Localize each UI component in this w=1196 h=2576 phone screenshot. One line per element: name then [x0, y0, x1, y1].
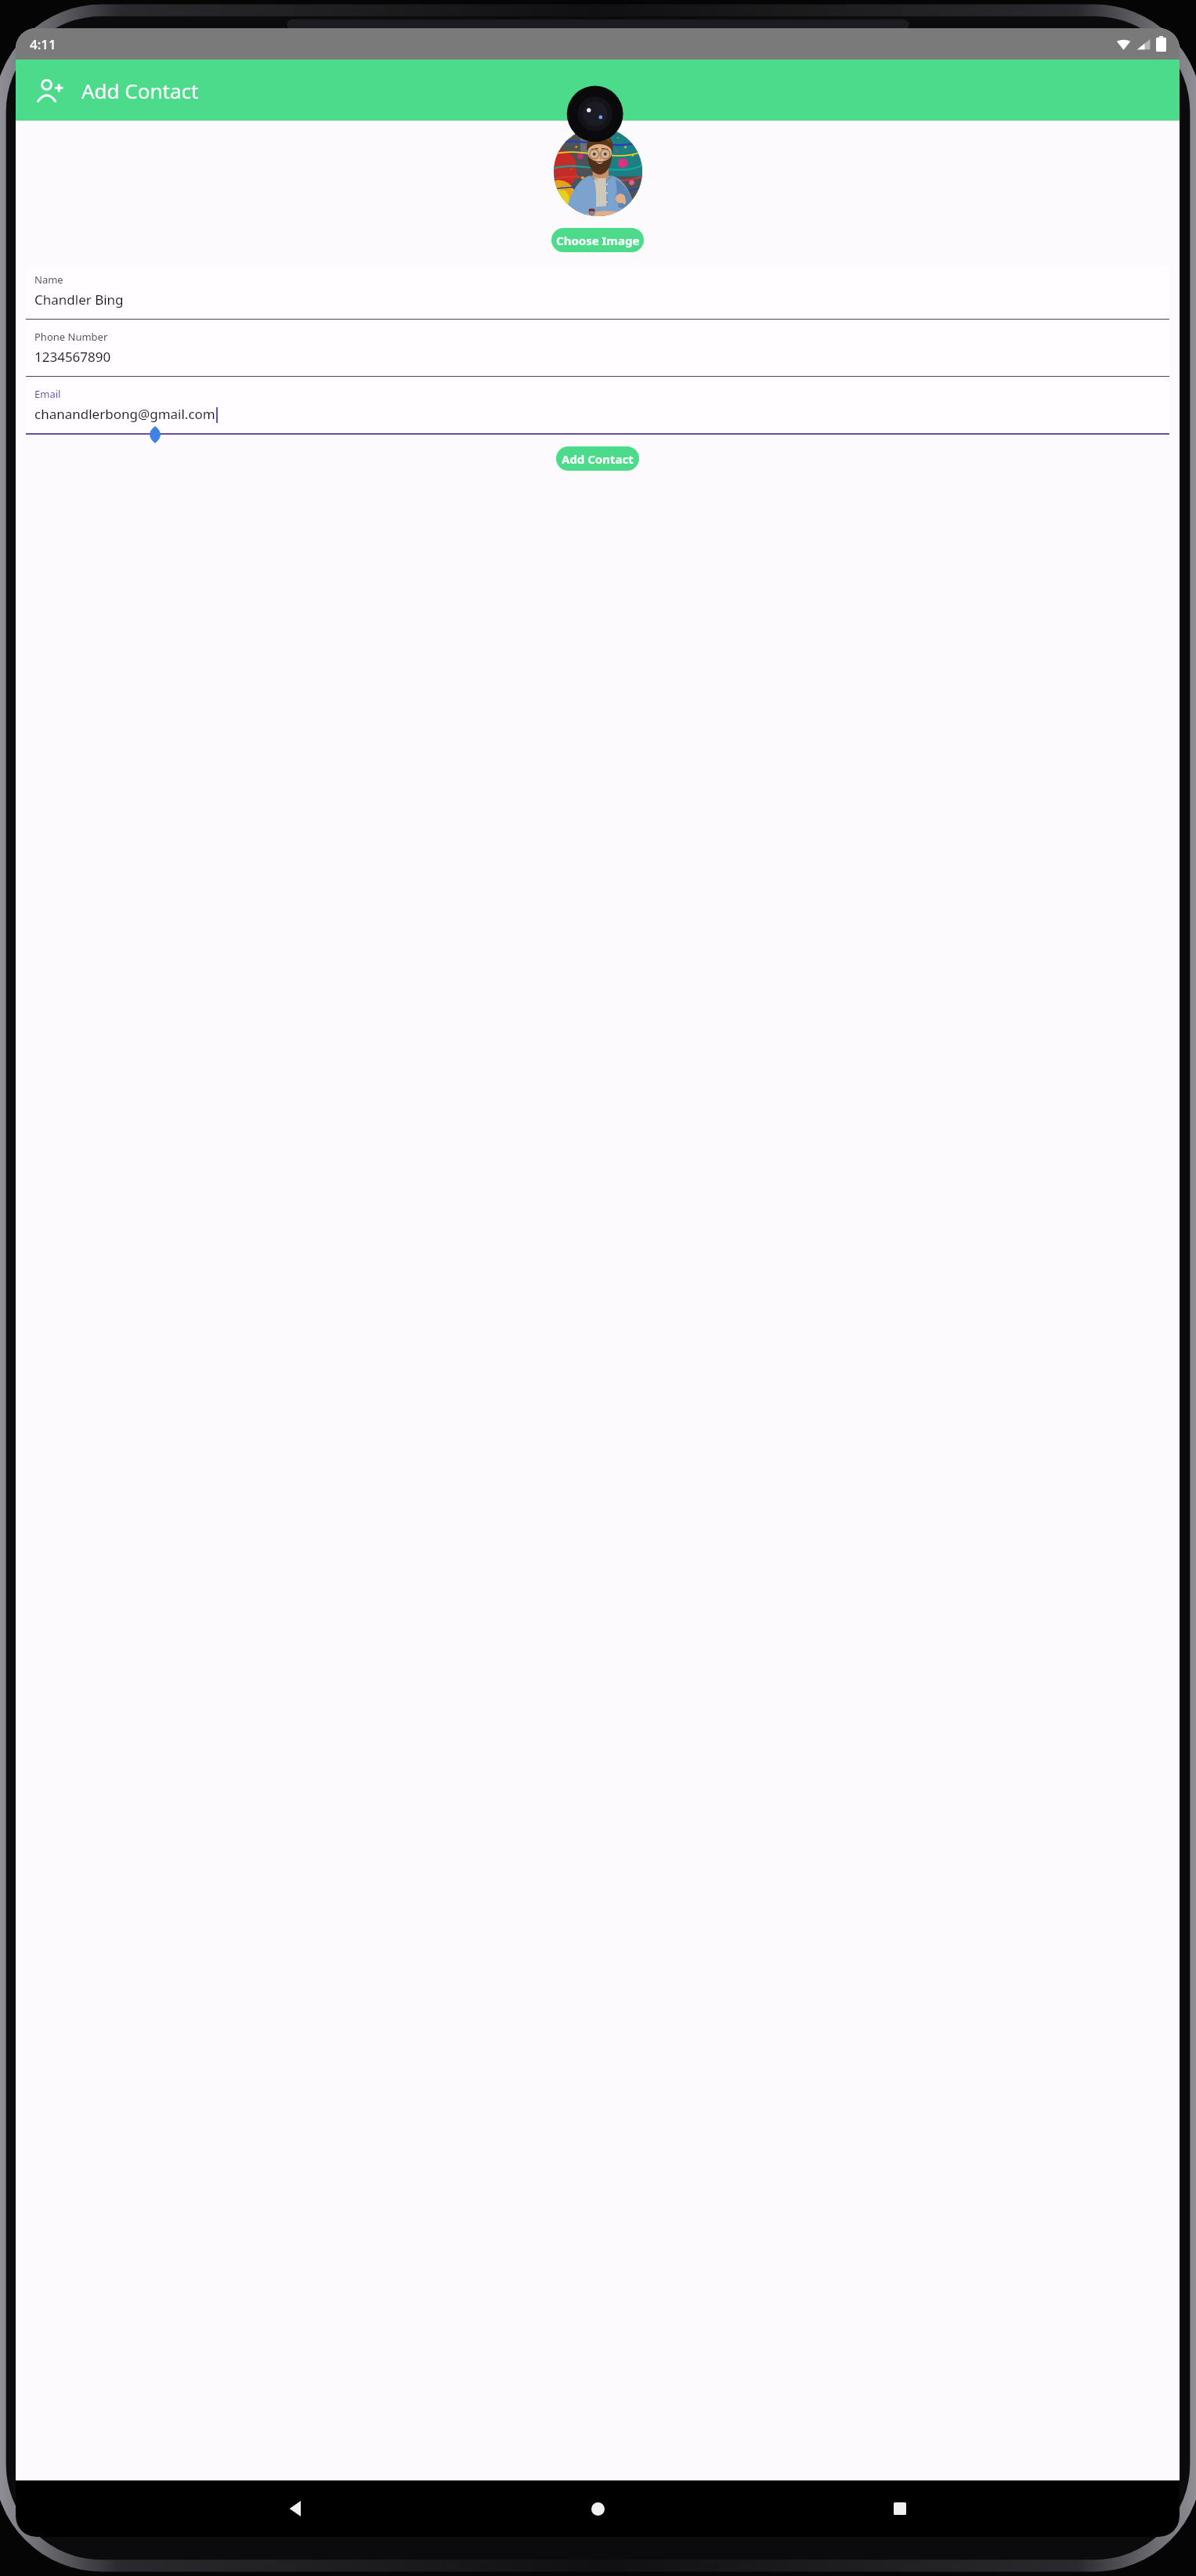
button[interactable]: Phone Number — [26, 323, 1169, 377]
staticText: Choose Image — [556, 233, 640, 248]
staticText: 4:11 — [30, 35, 56, 53]
button[interactable] — [554, 128, 642, 216]
staticText: Add Contact — [562, 451, 634, 467]
button[interactable]: Email — [26, 380, 1169, 435]
staticText: Chandler Bing — [34, 291, 124, 309]
button[interactable]: Name — [26, 266, 1169, 320]
staticText: chanandlerbong@gmail.com — [34, 405, 215, 423]
button[interactable]: Recent apps — [878, 2487, 922, 2531]
staticText: Phone Number — [34, 330, 108, 344]
other: Add contact — [33, 74, 66, 107]
button[interactable]: Home — [576, 2487, 620, 2531]
button[interactable]: Back — [274, 2487, 318, 2531]
staticText: Email — [34, 387, 61, 401]
staticText: 1234567890 — [34, 348, 111, 366]
button[interactable]: Add Contact — [556, 446, 639, 471]
staticText: Add Contact — [81, 77, 199, 104]
button[interactable]: Choose Image — [551, 228, 644, 252]
staticText: Name — [34, 273, 63, 287]
